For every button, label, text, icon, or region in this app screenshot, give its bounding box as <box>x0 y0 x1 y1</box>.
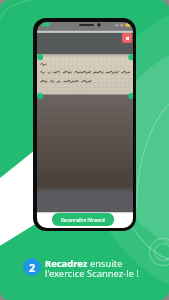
staticText: 2 <box>29 260 36 275</box>
staticText: ensuite <box>90 257 123 270</box>
button[interactable]: Reconnaître l'énoncé <box>52 213 114 226</box>
button[interactable]: Fermer <box>122 33 132 43</box>
staticText: l'exercice Scannez-le ! <box>45 267 139 280</box>
staticText: Recadrez <box>45 257 90 270</box>
staticText: Reconnaître l'énoncé <box>61 217 105 223</box>
button[interactable]: 2 <box>23 258 41 276</box>
